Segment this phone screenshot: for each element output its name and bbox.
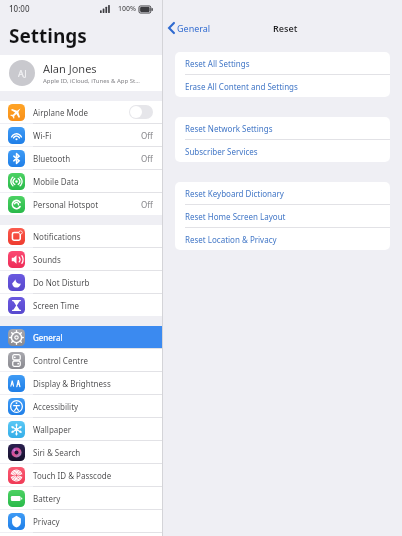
button[interactable]: Reset All Settings xyxy=(175,52,390,74)
button[interactable]: Touch ID & Passcode xyxy=(0,464,162,486)
button[interactable]: Mobile Data xyxy=(0,170,162,192)
button[interactable]: Control Centre xyxy=(0,349,162,371)
button[interactable]: Privacy xyxy=(0,510,162,532)
button[interactable]: Reset Location & Privacy xyxy=(175,228,390,250)
button[interactable]: Display & Brightness xyxy=(0,372,162,394)
staticText: Wallpaper xyxy=(33,424,153,435)
button[interactable]: Reset Home Screen Layout xyxy=(175,205,390,227)
staticText: Display & Brightness xyxy=(33,378,153,389)
staticText: Off xyxy=(141,199,153,210)
staticText: General xyxy=(33,332,153,343)
staticText: Battery xyxy=(33,493,153,504)
staticText: Bluetooth xyxy=(33,153,141,164)
button[interactable]: Airplane Mode xyxy=(0,101,162,123)
button[interactable]: Accessibility xyxy=(0,395,162,417)
staticText: Screen Time xyxy=(33,300,153,311)
staticText: Sounds xyxy=(33,254,153,265)
staticText: Apple ID, iCloud, iTunes & App St... xyxy=(43,77,140,85)
staticText: Privacy xyxy=(33,516,153,527)
staticText: Reset Location & Privacy xyxy=(185,234,277,245)
staticText: Mobile Data xyxy=(33,176,153,187)
staticText: Control Centre xyxy=(33,355,153,366)
button[interactable]: Notifications xyxy=(0,225,162,247)
staticText: Personal Hotspot xyxy=(33,199,141,210)
staticText: Siri & Search xyxy=(33,447,153,458)
button[interactable]: Airplane Mode toggle xyxy=(129,105,153,119)
staticText: Reset All Settings xyxy=(185,58,250,69)
staticText: Alan Jones xyxy=(43,61,97,76)
staticText: Erase All Content and Settings xyxy=(185,81,298,92)
staticText: AJ xyxy=(18,67,27,79)
button[interactable]: Erase All Content and Settings xyxy=(175,75,390,97)
button[interactable]: Wi-Fi xyxy=(0,124,162,146)
button[interactable]: Do Not Disturb xyxy=(0,271,162,293)
button[interactable]: Reset Network Settings xyxy=(175,117,390,139)
button[interactable]: Subscriber Services xyxy=(175,140,390,162)
staticText: Airplane Mode xyxy=(33,107,129,118)
staticText: Wi-Fi xyxy=(33,130,141,141)
staticText: Accessibility xyxy=(33,401,153,412)
staticText: Subscriber Services xyxy=(185,146,258,157)
button[interactable]: General xyxy=(0,326,162,348)
staticText: Notifications xyxy=(33,231,153,242)
staticText: Off xyxy=(141,130,153,141)
button[interactable]: Reset Keyboard Dictionary xyxy=(175,182,390,204)
staticText: 10:00 xyxy=(9,3,30,14)
button[interactable]: Siri & Search xyxy=(0,441,162,463)
staticText: Off xyxy=(141,153,153,164)
staticText: Reset xyxy=(273,22,298,34)
button[interactable]: Battery xyxy=(0,487,162,509)
button[interactable]: Screen Time xyxy=(0,294,162,316)
button[interactable]: Personal Hotspot xyxy=(0,193,162,215)
staticText: Do Not Disturb xyxy=(33,277,153,288)
staticText: Reset Network Settings xyxy=(185,123,273,134)
staticText: Touch ID & Passcode xyxy=(33,470,153,481)
button[interactable]: General xyxy=(166,20,213,36)
staticText: General xyxy=(177,22,211,34)
button[interactable]: Bluetooth xyxy=(0,147,162,169)
staticText: Reset Home Screen Layout xyxy=(185,211,286,222)
button[interactable]: Wallpaper xyxy=(0,418,162,440)
button[interactable]: AJ xyxy=(0,55,162,91)
button[interactable]: Sounds xyxy=(0,248,162,270)
staticText: Reset Keyboard Dictionary xyxy=(185,188,284,199)
staticText: 100% xyxy=(118,4,136,14)
staticText: Settings xyxy=(9,23,87,49)
